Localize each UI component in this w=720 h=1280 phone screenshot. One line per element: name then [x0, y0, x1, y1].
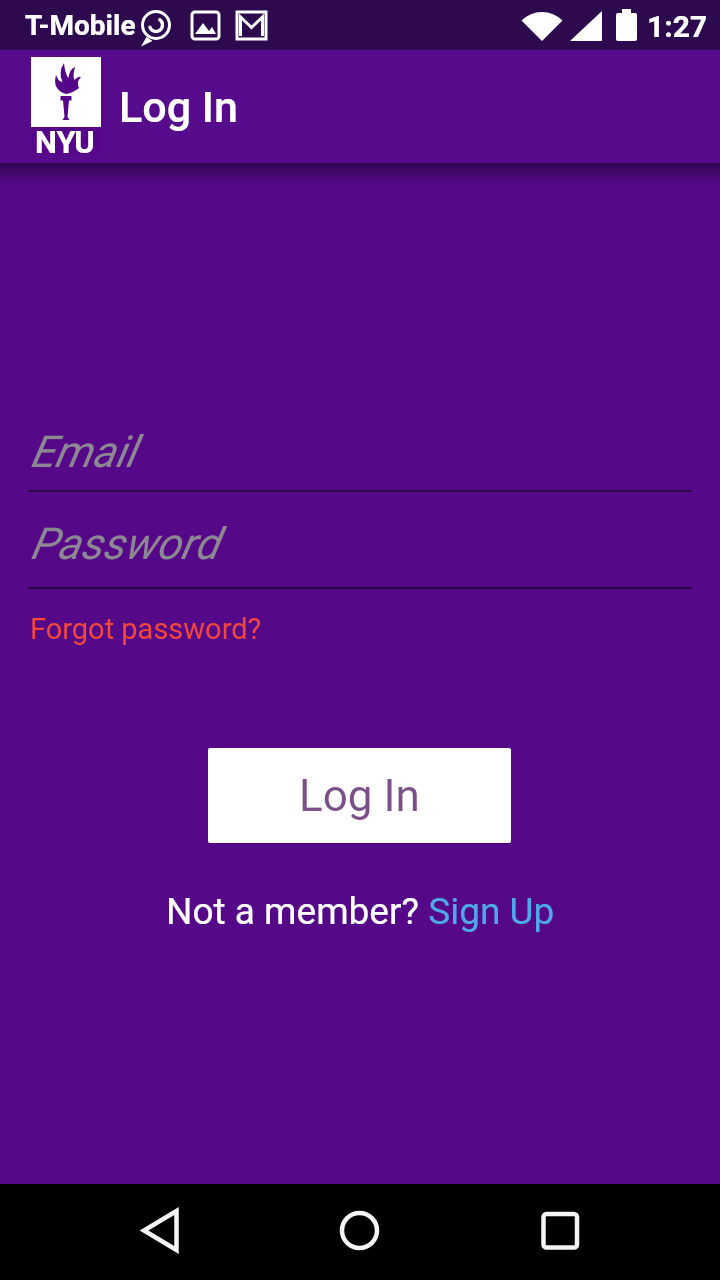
button[interactable] — [128, 1194, 193, 1270]
staticText: Password — [30, 518, 219, 570]
button[interactable] — [528, 1194, 593, 1270]
button[interactable]: Forgot password? — [30, 612, 262, 646]
staticText: Log In — [119, 82, 238, 132]
staticText: 1:27 — [647, 9, 708, 44]
staticText: Log In — [299, 770, 420, 822]
button[interactable]: Log In — [208, 748, 511, 843]
staticText: T-Mobile — [25, 9, 136, 42]
staticText: NYU — [35, 124, 95, 160]
button[interactable]: Password — [28, 515, 692, 589]
button[interactable]: NYU — [31, 57, 101, 154]
staticText: Email — [30, 426, 136, 478]
button[interactable] — [327, 1194, 392, 1270]
button[interactable]: Email — [28, 418, 692, 492]
button[interactable]: Not a member? Sign Up — [166, 890, 555, 933]
